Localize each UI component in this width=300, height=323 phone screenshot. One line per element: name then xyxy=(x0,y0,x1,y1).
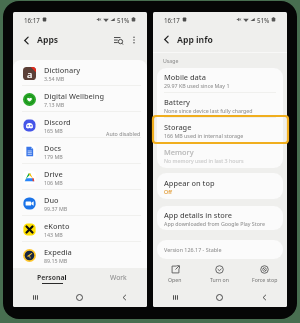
button[interactable]: Search apps xyxy=(111,33,125,47)
button[interactable]: More options xyxy=(127,33,141,47)
staticText: Appear on top xyxy=(164,178,215,188)
staticText: Open xyxy=(168,276,182,283)
staticText: 51% xyxy=(117,16,130,24)
staticText: Version 126.17 - Stable xyxy=(164,246,222,253)
staticText: Turn on xyxy=(210,276,229,283)
staticText: 106 MB xyxy=(44,179,63,186)
button[interactable]: Duo xyxy=(13,190,147,216)
button[interactable]: eKonto xyxy=(13,216,147,242)
staticText: eKonto xyxy=(44,221,70,231)
staticText: Discord xyxy=(44,117,71,127)
button[interactable]: Navigate up xyxy=(159,32,174,47)
button[interactable]: Work xyxy=(90,268,147,288)
staticText: No memory used in last 3 hours xyxy=(164,157,244,164)
button[interactable]: Memory xyxy=(157,143,283,168)
staticText: 89.15 MB xyxy=(44,257,68,264)
staticText: 16:17 xyxy=(24,16,40,24)
button[interactable]: Turn on xyxy=(197,259,242,288)
staticText: Memory xyxy=(164,147,194,157)
button[interactable]: Mobile data xyxy=(157,68,283,93)
staticText: 3.54 MB xyxy=(44,75,65,82)
staticText: Apps xyxy=(37,34,59,46)
button[interactable]: Home xyxy=(57,288,102,307)
button[interactable]: Navigate up xyxy=(19,33,34,48)
staticText: 7.13 MB xyxy=(44,101,65,108)
staticText: App details in store xyxy=(164,210,233,220)
staticText: 29.97 KB used since May 1 xyxy=(164,82,230,89)
button[interactable]: Home xyxy=(197,288,242,307)
button[interactable]: Open xyxy=(153,259,197,288)
staticText: 179 MB xyxy=(44,153,63,160)
staticText: Digital Wellbeing xyxy=(44,91,105,101)
staticText: Battery xyxy=(164,97,190,107)
button[interactable]: Back xyxy=(242,288,287,307)
button[interactable]: a xyxy=(13,60,147,86)
staticText: Expedia xyxy=(44,247,72,257)
staticText: Force stop xyxy=(252,276,278,283)
staticText: 99.37 MB xyxy=(44,205,68,212)
staticText: 165 MB xyxy=(44,127,63,134)
staticText: 16:17 xyxy=(164,16,180,24)
button[interactable]: Force stop xyxy=(242,259,287,288)
staticText: Docs xyxy=(44,143,62,153)
button[interactable]: Digital Wellbeing xyxy=(13,86,147,112)
staticText: a xyxy=(27,68,33,80)
staticText: 51% xyxy=(257,16,270,24)
button[interactable]: Personal xyxy=(13,268,90,288)
button[interactable]: Recents xyxy=(153,288,197,307)
button[interactable]: Expedia xyxy=(13,242,147,268)
staticText: Drive xyxy=(44,169,63,179)
button[interactable]: Appear on top xyxy=(157,173,283,199)
staticText: Work xyxy=(110,273,127,282)
staticText: None since device last fully charged xyxy=(164,107,253,114)
staticText: 143 MB xyxy=(44,231,63,238)
button[interactable]: Discord xyxy=(13,112,147,138)
button[interactable]: Docs xyxy=(13,138,147,164)
staticText: Personal xyxy=(37,273,67,282)
button[interactable]: Storage xyxy=(157,118,283,143)
staticText: Storage xyxy=(164,122,192,132)
staticText: Mobile data xyxy=(164,72,206,82)
button[interactable]: Drive xyxy=(13,164,147,190)
staticText: Off xyxy=(164,188,172,195)
staticText: Usage xyxy=(163,57,179,64)
button[interactable]: Recents xyxy=(13,288,57,307)
staticText: 166 MB used in internal storage xyxy=(164,132,244,139)
staticText: Auto disabled xyxy=(106,130,141,137)
button[interactable]: App details in store xyxy=(157,206,283,230)
button[interactable]: Battery xyxy=(157,93,283,118)
staticText: Duo xyxy=(44,195,59,205)
button[interactable]: Back xyxy=(102,288,147,307)
staticText: Dictionary xyxy=(44,65,81,75)
staticText: App info xyxy=(177,34,213,46)
staticText: App downloaded from Google Play Store xyxy=(164,220,265,227)
